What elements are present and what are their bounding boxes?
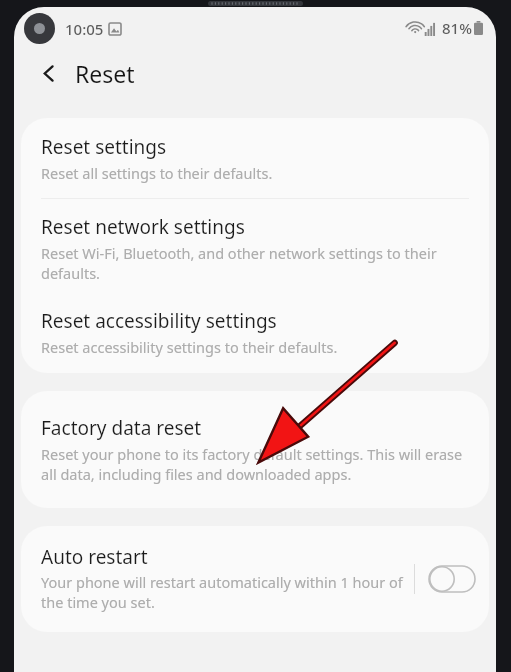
staticText: Reset network settings xyxy=(41,214,245,240)
staticText: Auto restart xyxy=(41,544,148,570)
button[interactable]: Reset settings xyxy=(21,118,489,198)
staticText: Reset your phone to its factory default … xyxy=(41,444,467,484)
staticText: Factory data reset xyxy=(41,415,202,441)
button[interactable]: Reset network settings xyxy=(21,199,489,296)
button[interactable]: Reset accessibility settings xyxy=(21,296,489,373)
button[interactable]: Auto restart xyxy=(21,526,414,632)
staticText: Reset all settings to their defaults. xyxy=(41,163,273,183)
staticText: Reset xyxy=(75,58,135,89)
staticText: Reset accessibility settings xyxy=(41,308,277,334)
staticText: Reset settings xyxy=(41,134,167,160)
staticText: Your phone will restart automatically wi… xyxy=(41,572,408,612)
staticText: Reset Wi-Fi, Bluetooth, and other networ… xyxy=(41,243,467,283)
button[interactable]: Factory data reset xyxy=(21,391,489,508)
staticText: 10:05 xyxy=(65,19,104,39)
button[interactable]: Auto restart toggle xyxy=(415,554,489,604)
button[interactable]: Back xyxy=(32,56,66,90)
staticText: Reset accessibility settings to their de… xyxy=(41,337,338,357)
staticText: 81% xyxy=(442,18,472,38)
